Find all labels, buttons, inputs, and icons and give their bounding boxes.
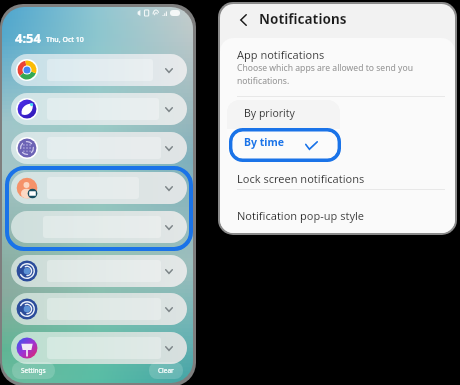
button[interactable]: Back xyxy=(234,8,252,32)
staticText: Clear xyxy=(158,366,174,375)
button[interactable] xyxy=(11,93,187,125)
button[interactable] xyxy=(11,332,187,364)
staticText: Notifications xyxy=(259,10,347,28)
button[interactable]: By time xyxy=(227,129,340,162)
staticText: 4:54 xyxy=(15,29,41,47)
staticText: notifications. xyxy=(237,75,290,87)
staticText: Notification pop-up style xyxy=(237,208,365,223)
button[interactable]: Lock screen notifications xyxy=(220,157,455,185)
staticText: By priority xyxy=(244,106,295,120)
button[interactable]: Settings xyxy=(12,362,55,379)
button[interactable] xyxy=(11,172,187,204)
button[interactable]: By priority xyxy=(227,100,340,129)
button[interactable] xyxy=(11,293,187,325)
staticText: Settings xyxy=(21,366,46,375)
staticText: Lock screen notifications xyxy=(237,171,365,186)
button[interactable] xyxy=(11,255,187,287)
button[interactable]: Clear xyxy=(149,362,183,379)
button[interactable] xyxy=(11,211,187,243)
staticText: App notifications xyxy=(237,47,325,62)
staticText: By time xyxy=(244,135,284,149)
staticText: Thu, Oct 10 xyxy=(46,35,84,45)
button[interactable] xyxy=(11,54,187,86)
button[interactable]: Notification pop-up style xyxy=(220,194,455,222)
staticText: Choose which apps are allowed to send yo… xyxy=(237,62,413,74)
button[interactable] xyxy=(11,132,187,164)
